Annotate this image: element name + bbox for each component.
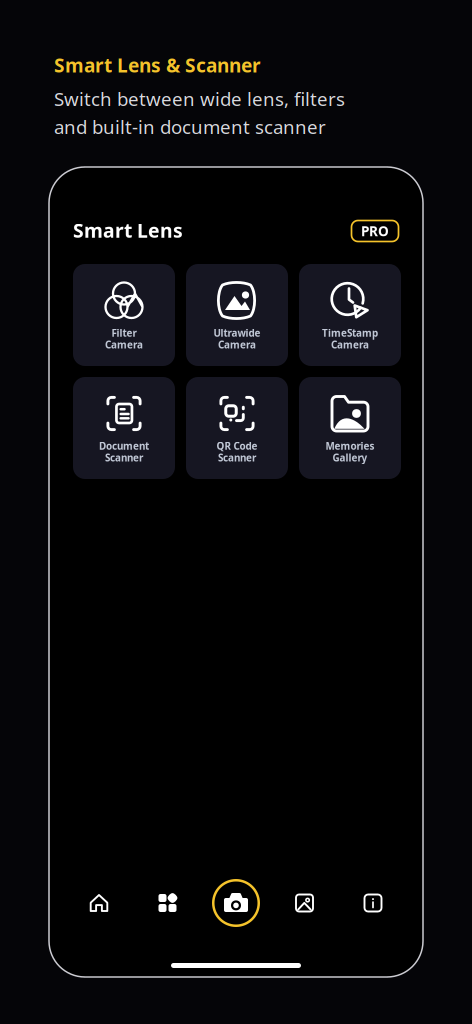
- staticText: Camera: [105, 338, 143, 351]
- staticText: PRO: [361, 222, 389, 240]
- staticText: Switch between wide lens, filters: [54, 86, 345, 111]
- button[interactable]: QR Code: [186, 377, 288, 479]
- staticText: TimeStamp: [322, 326, 378, 340]
- button[interactable]: TimeStamp: [299, 264, 401, 366]
- staticText: Camera: [331, 338, 369, 351]
- staticText: Scanner: [218, 451, 256, 464]
- button[interactable]: PRO: [351, 220, 399, 242]
- button[interactable]: Document: [73, 377, 175, 479]
- button[interactable]: Camera: [202, 878, 270, 928]
- staticText: Smart Lens: [73, 217, 183, 243]
- button[interactable]: Filter: [73, 264, 175, 366]
- staticText: Camera: [218, 338, 256, 351]
- staticText: Scanner: [105, 451, 143, 464]
- button[interactable]: Categories: [133, 878, 202, 928]
- staticText: Ultrawide: [213, 326, 260, 340]
- staticText: QR Code: [216, 439, 257, 453]
- button[interactable]: Memories: [299, 377, 401, 479]
- button[interactable]: Info: [339, 878, 407, 928]
- staticText: Smart Lens & Scanner: [54, 52, 261, 78]
- button[interactable]: Home: [65, 878, 133, 928]
- staticText: Gallery: [332, 451, 367, 464]
- button[interactable]: Ultrawide: [186, 264, 288, 366]
- staticText: and built-in document scanner: [54, 114, 326, 139]
- staticText: Document: [99, 439, 149, 453]
- staticText: Filter: [111, 326, 136, 340]
- staticText: Memories: [325, 439, 374, 453]
- button[interactable]: Gallery: [270, 878, 339, 928]
